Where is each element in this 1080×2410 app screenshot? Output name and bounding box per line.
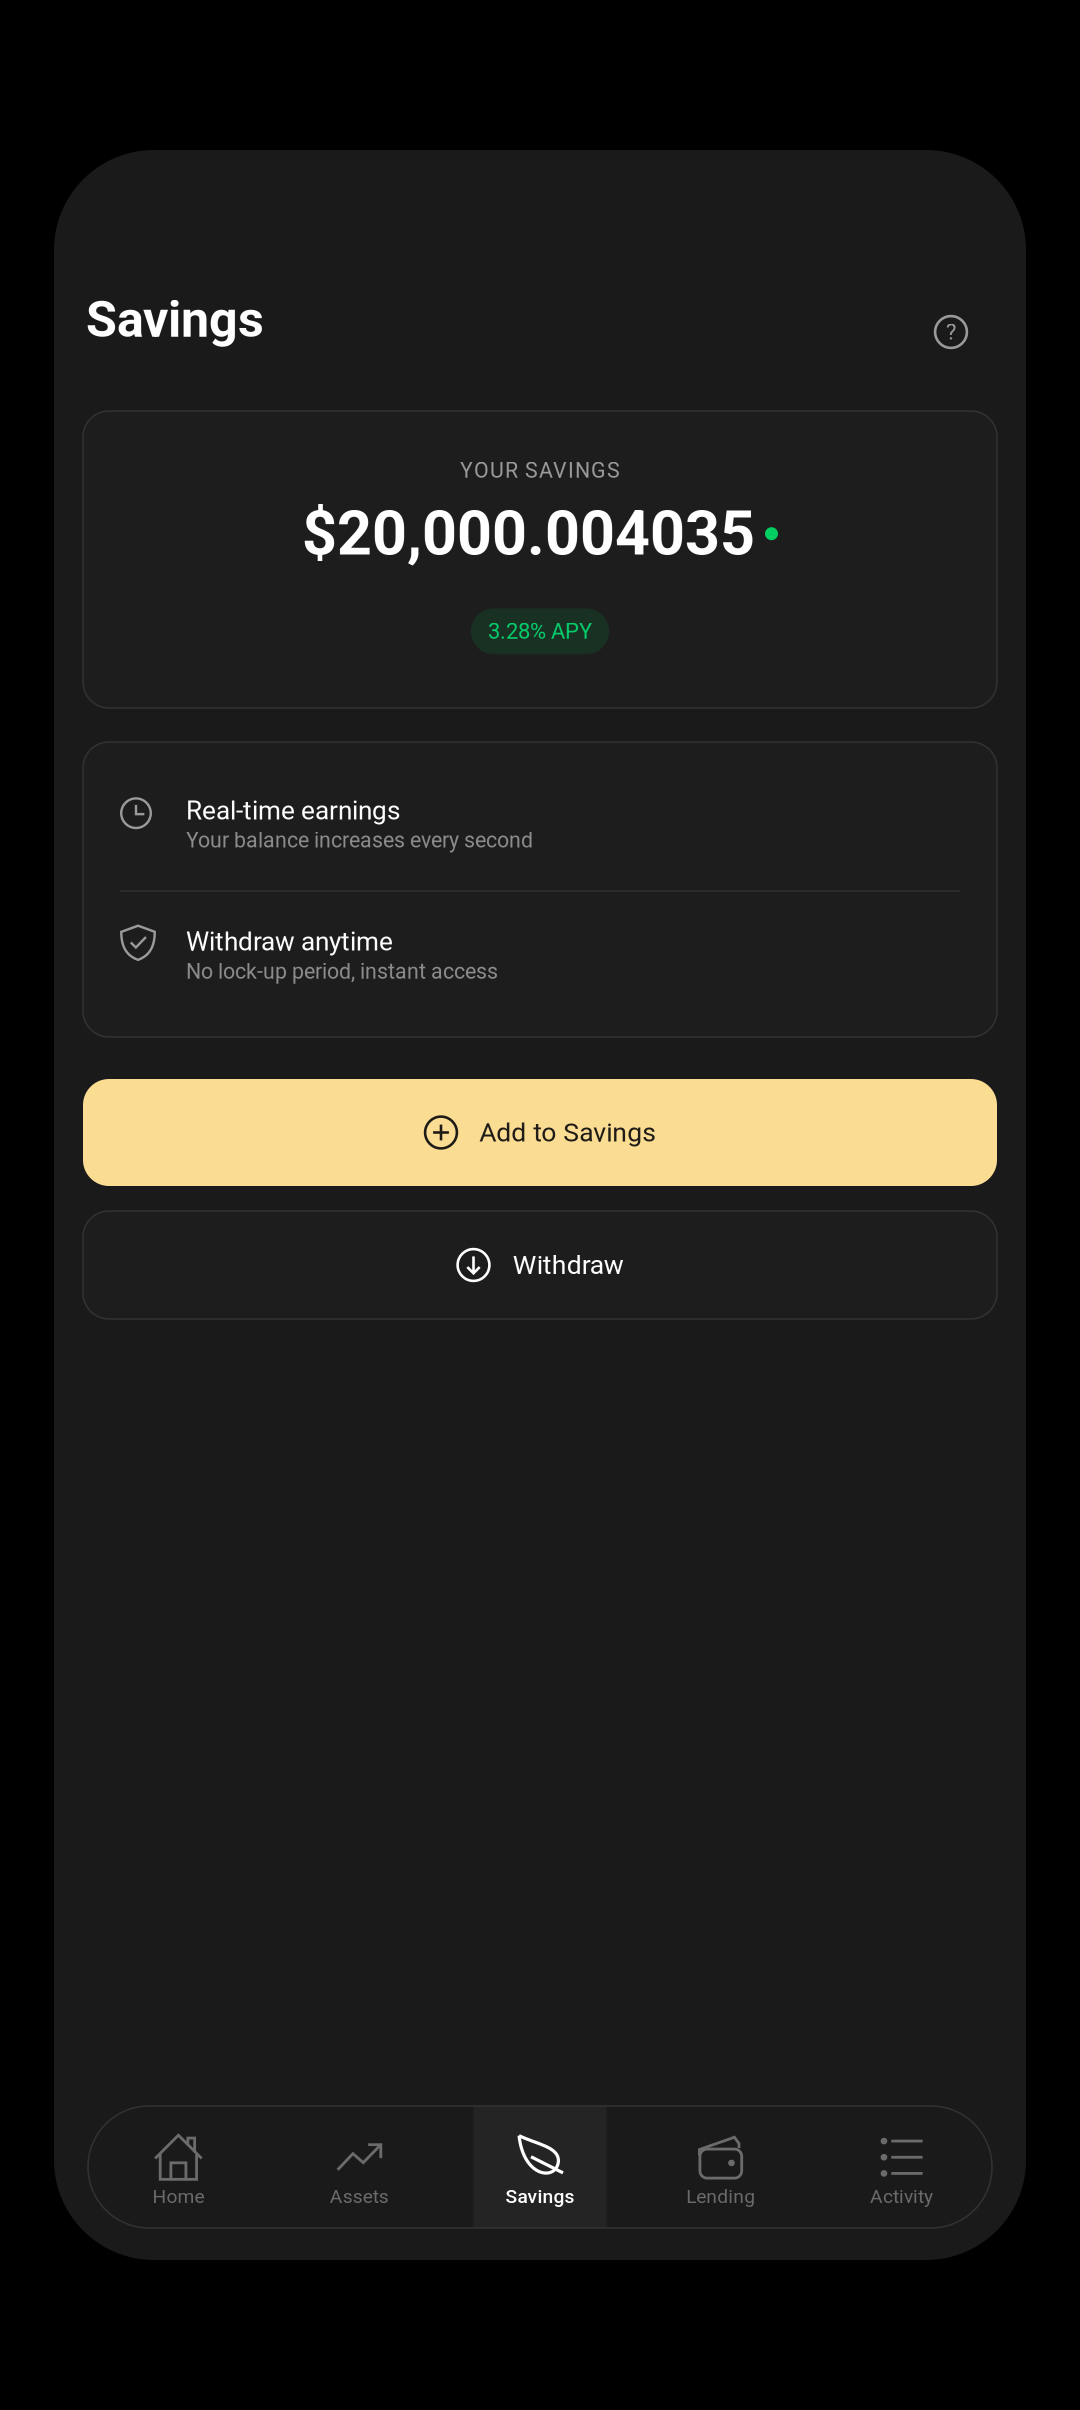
button[interactable]: Assets [269, 2106, 450, 2228]
button[interactable]: Add to Savings [83, 1079, 997, 1186]
staticText: No lock-up period, instant access [186, 959, 498, 984]
button[interactable]: Home [88, 2106, 269, 2228]
staticText: Savings [505, 2185, 574, 2208]
button[interactable]: Activity [811, 2106, 992, 2228]
button[interactable]: Savings [450, 2106, 630, 2228]
staticText: Savings [86, 290, 264, 349]
button[interactable]: Lending [630, 2106, 811, 2228]
staticText: YOUR SAVINGS [460, 458, 620, 483]
staticText: Add to Savings [479, 1117, 656, 1148]
staticText: Withdraw anytime [186, 926, 393, 957]
staticText: 3.28% APY [488, 618, 592, 644]
staticText: ? [946, 319, 956, 345]
staticText: $20,000.004035 [302, 498, 755, 569]
staticText: Your balance increases every second [186, 828, 533, 853]
staticText: Home [152, 2185, 204, 2208]
staticText: Real-time earnings [186, 795, 400, 826]
staticText: Activity [870, 2185, 933, 2208]
staticText: Assets [330, 2185, 389, 2208]
button[interactable]: Withdraw [83, 1211, 997, 1319]
staticText: Lending [686, 2185, 755, 2208]
button[interactable]: Help [923, 304, 979, 360]
staticText: Withdraw [513, 1249, 624, 1281]
